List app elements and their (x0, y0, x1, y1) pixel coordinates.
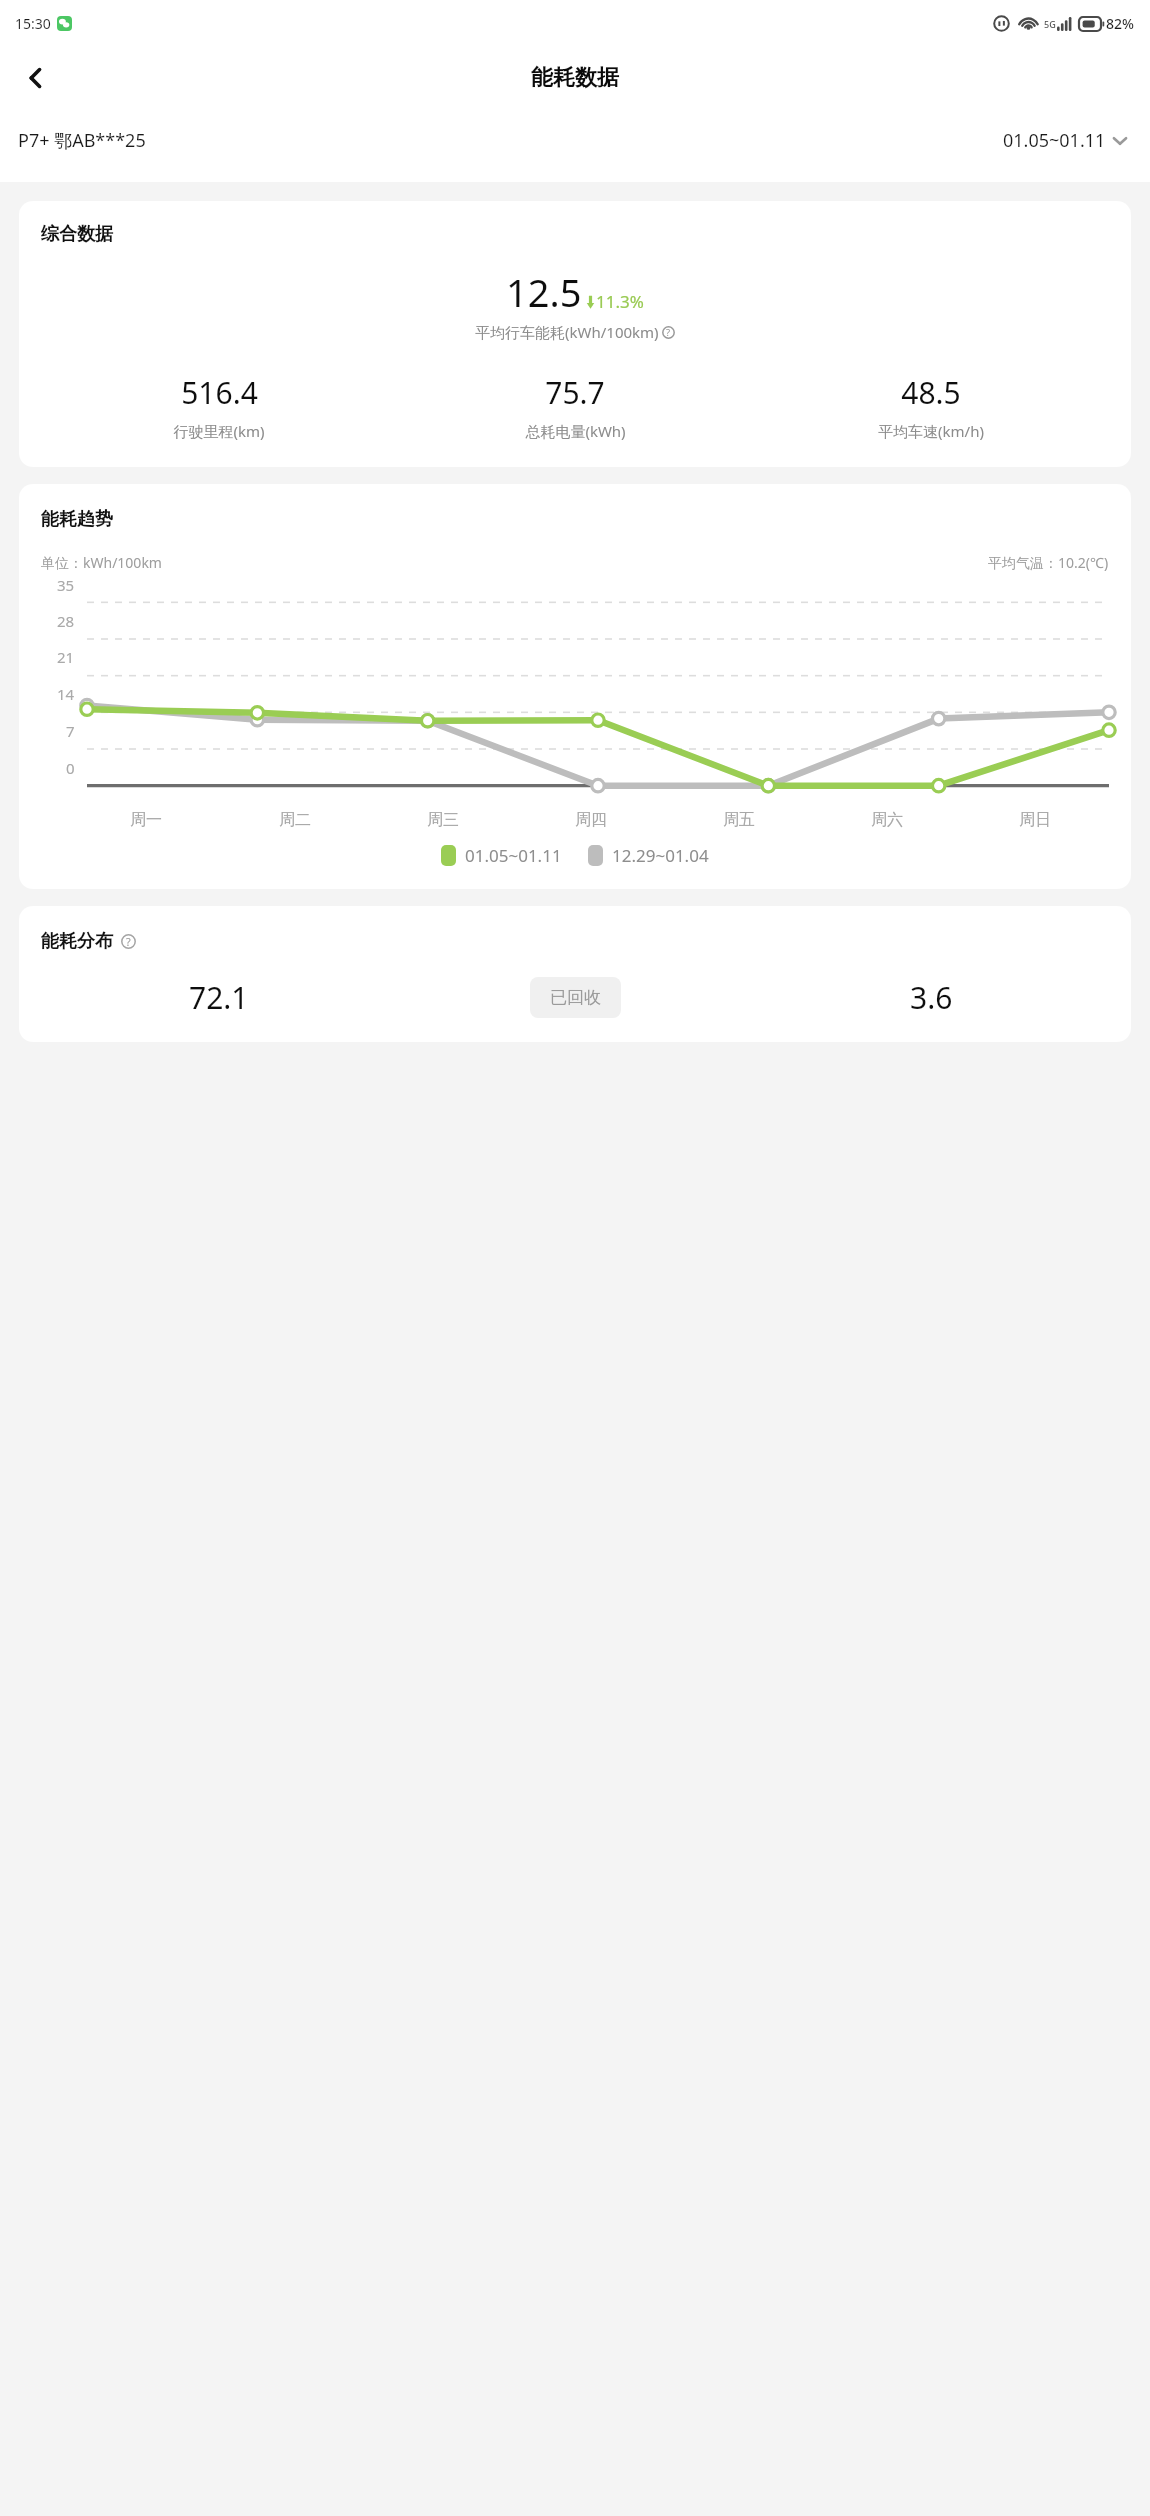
staticText: 总耗电量(kWh) (525, 421, 626, 441)
staticText: 综合数据 (41, 223, 113, 246)
staticText: 0 (66, 758, 75, 778)
staticText: 01.05~01.11 (465, 844, 562, 867)
staticText: 平均气温：10.2(℃) (988, 553, 1109, 572)
staticText: 平均车速(km/h) (878, 421, 984, 441)
staticText: ? (666, 326, 671, 339)
staticText: 周二 (279, 810, 311, 830)
staticText: 能耗分布 (41, 930, 113, 953)
staticText: 已回收 (550, 987, 601, 1008)
staticText: 12.5 (506, 266, 582, 318)
staticText: 14 (57, 684, 75, 704)
staticText: 11.3% (596, 290, 644, 313)
staticText: 周六 (871, 810, 903, 830)
staticText: 周三 (427, 810, 459, 830)
staticText: 单位：kWh/100km (41, 553, 162, 572)
staticText: 72.1 (189, 977, 249, 1018)
staticText: 516.4 (181, 372, 258, 413)
staticText: 周四 (575, 810, 607, 830)
staticText: 15:30 (15, 14, 51, 33)
staticText: 能耗数据 (531, 64, 619, 92)
button[interactable]: Back (10, 52, 62, 104)
staticText: 35 (57, 575, 75, 595)
staticText: 周五 (723, 810, 755, 830)
staticText: 01.05~01.11 (1003, 128, 1106, 153)
staticText: 行驶里程(km) (173, 421, 265, 441)
staticText: 5G (1044, 18, 1056, 30)
staticText: P7+ 鄂AB***25 (18, 128, 146, 153)
staticText: 48.5 (901, 372, 961, 413)
staticText: 75.7 (545, 372, 605, 413)
button[interactable]: 能耗分布 (19, 906, 1131, 1042)
staticText: 7 (66, 721, 75, 741)
staticText: 周一 (130, 810, 162, 830)
staticText: 21 (57, 647, 75, 667)
button[interactable]: 综合数据 (19, 201, 1131, 467)
staticText: 能耗趋势 (41, 508, 113, 531)
staticText: 平均行车能耗(kWh/100km) (475, 322, 659, 342)
button[interactable]: 已回收 (530, 977, 621, 1018)
staticText: ? (126, 934, 131, 949)
button[interactable]: 01.05~01.11 (999, 124, 1132, 157)
staticText: 82% (1106, 14, 1134, 33)
staticText: 周日 (1019, 810, 1051, 830)
staticText: 28 (57, 611, 75, 631)
staticText: 12.29~01.04 (612, 844, 709, 867)
staticText: 3.6 (910, 977, 953, 1018)
button[interactable]: 能耗趋势 (19, 484, 1131, 889)
